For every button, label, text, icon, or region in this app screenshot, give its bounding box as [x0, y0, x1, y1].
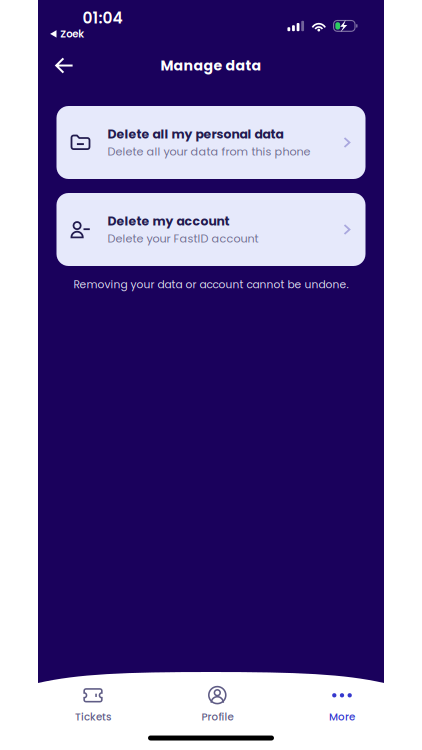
- staticText: Zoek: [60, 27, 84, 41]
- button[interactable]: Tickets: [56, 685, 130, 725]
- staticText: Delete all my personal data: [107, 125, 283, 143]
- button[interactable]: Delete my account: [56, 193, 365, 266]
- staticText: Tickets: [75, 710, 111, 724]
- staticText: More: [329, 710, 355, 724]
- staticText: Delete my account: [107, 212, 229, 230]
- staticText: Profile: [201, 710, 233, 724]
- staticText: Manage data: [160, 56, 261, 75]
- staticText: 01:04: [83, 7, 123, 29]
- staticText: Delete your FastID account: [107, 231, 258, 246]
- button[interactable]: More: [305, 685, 379, 725]
- staticText: Delete all your data from this phone: [107, 144, 310, 159]
- staticText: Removing your data or account cannot be …: [73, 277, 348, 292]
- button[interactable]: Back: [44, 45, 84, 85]
- button[interactable]: Profile: [180, 685, 254, 725]
- button[interactable]: Delete all my personal data: [56, 106, 365, 179]
